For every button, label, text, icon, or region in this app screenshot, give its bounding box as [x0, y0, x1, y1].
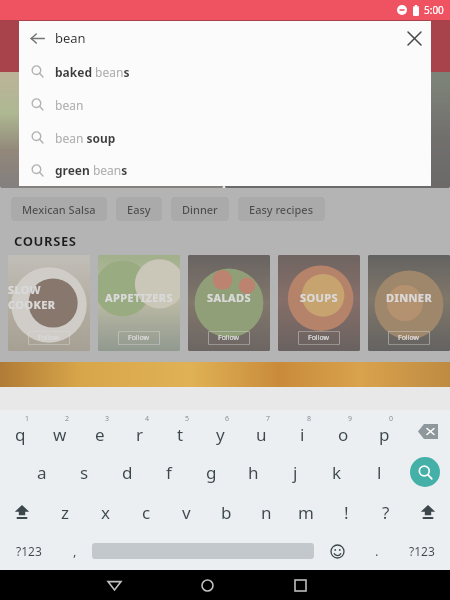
staticText: DINNER: [386, 290, 432, 305]
button[interactable]: Mexican Salsa: [11, 197, 107, 221]
button[interactable]: d: [106, 452, 148, 492]
button[interactable]: c: [126, 492, 166, 532]
button[interactable]: Follow: [388, 331, 430, 345]
button[interactable]: Follow: [118, 331, 160, 345]
button[interactable]: s: [63, 452, 106, 492]
button[interactable]: 5: [160, 410, 200, 452]
button[interactable]: 9: [323, 410, 364, 452]
button[interactable]: APPETIZERS: [98, 255, 180, 351]
button[interactable]: Shift: [0, 492, 44, 532]
button[interactable]: ?: [366, 492, 406, 532]
staticText: APPETIZERS: [105, 290, 173, 305]
button[interactable]: a: [20, 452, 63, 492]
button[interactable]: 4: [120, 410, 160, 452]
button[interactable]: b: [206, 492, 246, 532]
staticText: 6: [225, 414, 230, 424]
button[interactable]: Emoji: [314, 532, 360, 570]
staticText: COURSES: [14, 232, 77, 250]
button[interactable]: bean: [19, 88, 431, 121]
button[interactable]: z: [44, 492, 85, 532]
button[interactable]: SOUPS: [278, 255, 360, 351]
button[interactable]: VEGETABLES: [225, 20, 450, 188]
staticText: l: [377, 461, 382, 484]
staticText: c: [142, 501, 151, 524]
staticText: Mexican Salsa: [22, 202, 96, 217]
button[interactable]: SALADS: [188, 255, 270, 351]
button[interactable]: Easy recipes: [238, 197, 325, 221]
button[interactable]: baked beans: [19, 55, 431, 88]
staticText: SALADS: [207, 290, 251, 305]
staticText: 0: [389, 414, 394, 424]
button[interactable]: Recent apps: [283, 570, 317, 600]
button[interactable]: Backspace: [405, 410, 450, 452]
button[interactable]: Back: [19, 21, 431, 55]
button[interactable]: Back: [19, 21, 55, 55]
button[interactable]: 6: [200, 410, 241, 452]
button[interactable]: 3: [80, 410, 120, 452]
button[interactable]: ?123: [0, 532, 58, 570]
button[interactable]: [0, 20, 223, 188]
staticText: ,: [73, 542, 77, 560]
staticText: a: [37, 461, 47, 484]
staticText: t: [177, 423, 184, 446]
button[interactable]: 8: [282, 410, 323, 452]
staticText: y: [216, 423, 225, 446]
staticText: Follow: [398, 333, 420, 343]
button[interactable]: Follow: [298, 331, 340, 345]
staticText: 9: [348, 414, 353, 424]
button[interactable]: !: [326, 492, 366, 532]
staticText: v: [182, 501, 191, 524]
button[interactable]: Follow: [28, 331, 70, 345]
button[interactable]: DINNER: [368, 255, 450, 351]
button[interactable]: Follow: [208, 331, 250, 345]
button[interactable]: bean soup: [19, 121, 431, 154]
staticText: Easy recipes: [249, 202, 314, 217]
button[interactable]: SLOW COOKER: [8, 255, 90, 351]
button[interactable]: v: [166, 492, 206, 532]
staticText: e: [95, 423, 105, 446]
staticText: 8: [307, 414, 312, 424]
staticText: bean: [55, 97, 84, 113]
button[interactable]: m: [286, 492, 326, 532]
staticText: s: [80, 461, 89, 484]
staticText: g: [206, 461, 217, 484]
button[interactable]: k: [316, 452, 358, 492]
staticText: Follow: [128, 333, 150, 343]
staticText: 5:00: [424, 3, 444, 17]
button[interactable]: x: [85, 492, 126, 532]
button[interactable]: h: [232, 452, 274, 492]
staticText: Easy: [127, 202, 151, 217]
staticText: Follow: [218, 333, 240, 343]
button[interactable]: Easy: [116, 197, 162, 221]
button[interactable]: j: [274, 452, 316, 492]
button[interactable]: n: [246, 492, 286, 532]
button[interactable]: g: [190, 452, 232, 492]
button[interactable]: green beans: [19, 154, 431, 186]
button[interactable]: 1: [0, 410, 40, 452]
staticText: u: [256, 423, 267, 446]
staticText: 2: [65, 414, 70, 424]
staticText: n: [261, 501, 272, 524]
button[interactable]: Back: [97, 570, 131, 600]
staticText: b: [221, 501, 232, 524]
button[interactable]: Clear search: [397, 21, 431, 55]
button[interactable]: 0: [364, 410, 405, 452]
button[interactable]: f: [148, 452, 190, 492]
staticText: 3: [105, 414, 110, 424]
button[interactable]: Comma: [58, 532, 92, 570]
staticText: SOUPS: [300, 290, 338, 305]
staticText: ?: [382, 501, 390, 524]
button[interactable]: Period: [360, 532, 394, 570]
button[interactable]: Home: [190, 570, 224, 600]
button[interactable]: 2: [40, 410, 80, 452]
button[interactable]: ?123: [394, 532, 450, 570]
button[interactable]: l: [358, 452, 400, 492]
button[interactable]: Shift: [406, 492, 450, 532]
staticText: r: [136, 423, 144, 446]
button[interactable]: 7: [241, 410, 282, 452]
staticText: i: [300, 423, 305, 446]
button[interactable]: Search: [400, 452, 450, 492]
button[interactable]: Dinner: [171, 197, 229, 221]
